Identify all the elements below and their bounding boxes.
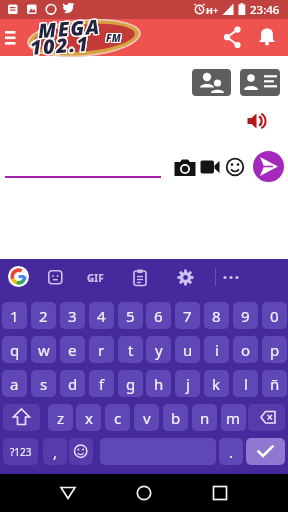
- staticText: a: [10, 374, 19, 394]
- button[interactable]: x: [76, 404, 101, 431]
- button[interactable]: [256, 26, 278, 48]
- button[interactable]: [225, 157, 245, 177]
- button[interactable]: [8, 266, 29, 287]
- button[interactable]: GIF: [83, 270, 107, 285]
- staticText: 102.1: [30, 30, 92, 61]
- staticText: 8: [212, 306, 221, 326]
- staticText: 102.1: [28, 30, 90, 61]
- button[interactable]: m: [221, 404, 246, 431]
- staticText: o: [241, 340, 251, 360]
- button[interactable]: [177, 269, 194, 286]
- staticText: i: [215, 340, 219, 360]
- button[interactable]: 0: [262, 302, 287, 329]
- button[interactable]: n: [192, 404, 217, 431]
- button[interactable]: h: [146, 370, 171, 397]
- button[interactable]: e: [60, 336, 85, 363]
- staticText: MEGA: [38, 14, 103, 45]
- staticText: 102.1: [28, 31, 90, 62]
- button[interactable]: c: [105, 404, 130, 431]
- button[interactable]: 9: [233, 302, 258, 329]
- staticText: h: [154, 374, 164, 394]
- staticText: w: [38, 340, 50, 360]
- button[interactable]: 5: [118, 302, 143, 329]
- button[interactable]: s: [31, 370, 56, 397]
- button[interactable]: 6: [146, 302, 171, 329]
- staticText: ñ: [270, 374, 280, 394]
- button[interactable]: a: [2, 370, 27, 397]
- staticText: g: [126, 374, 136, 394]
- button[interactable]: j: [175, 370, 200, 397]
- staticText: 102.1: [29, 28, 91, 59]
- button[interactable]: 8: [204, 302, 229, 329]
- button[interactable]: [246, 112, 268, 131]
- button[interactable]: 4: [89, 302, 114, 329]
- staticText: 5: [126, 306, 135, 326]
- button[interactable]: [132, 482, 156, 504]
- button[interactable]: [2, 27, 24, 49]
- button[interactable]: u: [175, 336, 200, 363]
- button[interactable]: z: [48, 404, 73, 431]
- button[interactable]: [192, 69, 231, 96]
- staticText: 7: [183, 306, 192, 326]
- button[interactable]: ,: [43, 438, 67, 465]
- button[interactable]: r: [89, 336, 114, 363]
- button[interactable]: g: [118, 370, 143, 397]
- button[interactable]: b: [163, 404, 188, 431]
- staticText: ?123: [10, 445, 32, 459]
- button[interactable]: [133, 269, 147, 286]
- staticText: j: [186, 374, 190, 394]
- staticText: MEGA: [36, 12, 101, 43]
- button[interactable]: 1: [2, 302, 27, 329]
- button[interactable]: ?123: [3, 438, 38, 465]
- button[interactable]: d: [60, 370, 85, 397]
- staticText: FM: [106, 31, 121, 45]
- staticText: z: [57, 408, 65, 428]
- staticText: k: [212, 374, 221, 394]
- staticText: MEGA: [38, 13, 103, 44]
- button[interactable]: [48, 270, 63, 285]
- staticText: c: [114, 408, 122, 428]
- button[interactable]: .: [219, 438, 243, 465]
- button[interactable]: [246, 438, 285, 465]
- button[interactable]: 3: [60, 302, 85, 329]
- button[interactable]: w: [31, 336, 56, 363]
- staticText: MEGA: [36, 13, 101, 44]
- staticText: 23:46: [250, 2, 280, 18]
- button[interactable]: [56, 482, 80, 504]
- button[interactable]: [253, 151, 284, 182]
- button[interactable]: 2: [31, 302, 56, 329]
- button[interactable]: [208, 482, 232, 504]
- button[interactable]: [3, 404, 40, 431]
- button[interactable]: y: [146, 336, 171, 363]
- staticText: 3: [68, 306, 77, 326]
- staticText: FM: [105, 32, 120, 46]
- button[interactable]: k: [204, 370, 229, 397]
- staticText: 102.1: [29, 31, 91, 62]
- button[interactable]: q: [2, 336, 27, 363]
- button[interactable]: 7: [175, 302, 200, 329]
- button[interactable]: [221, 26, 244, 49]
- staticText: 2: [39, 306, 48, 326]
- staticText: t: [128, 340, 134, 360]
- button[interactable]: [240, 69, 280, 96]
- staticText: FM: [107, 31, 122, 45]
- staticText: r: [98, 340, 105, 360]
- button[interactable]: t: [118, 336, 143, 363]
- button[interactable]: o: [233, 336, 258, 363]
- button[interactable]: l: [233, 370, 258, 397]
- staticText: FM: [106, 32, 121, 46]
- button[interactable]: [173, 155, 197, 179]
- staticText: u: [183, 340, 193, 360]
- button[interactable]: [248, 404, 285, 431]
- button[interactable]: p: [262, 336, 287, 363]
- button[interactable]: [200, 158, 222, 176]
- staticText: FM: [107, 30, 122, 44]
- staticText: MEGA: [37, 14, 102, 45]
- button[interactable]: [69, 438, 93, 465]
- button[interactable]: ñ: [262, 370, 287, 397]
- button[interactable]: [222, 270, 240, 285]
- button[interactable]: v: [134, 404, 159, 431]
- button[interactable]: i: [204, 336, 229, 363]
- button[interactable]: f: [89, 370, 114, 397]
